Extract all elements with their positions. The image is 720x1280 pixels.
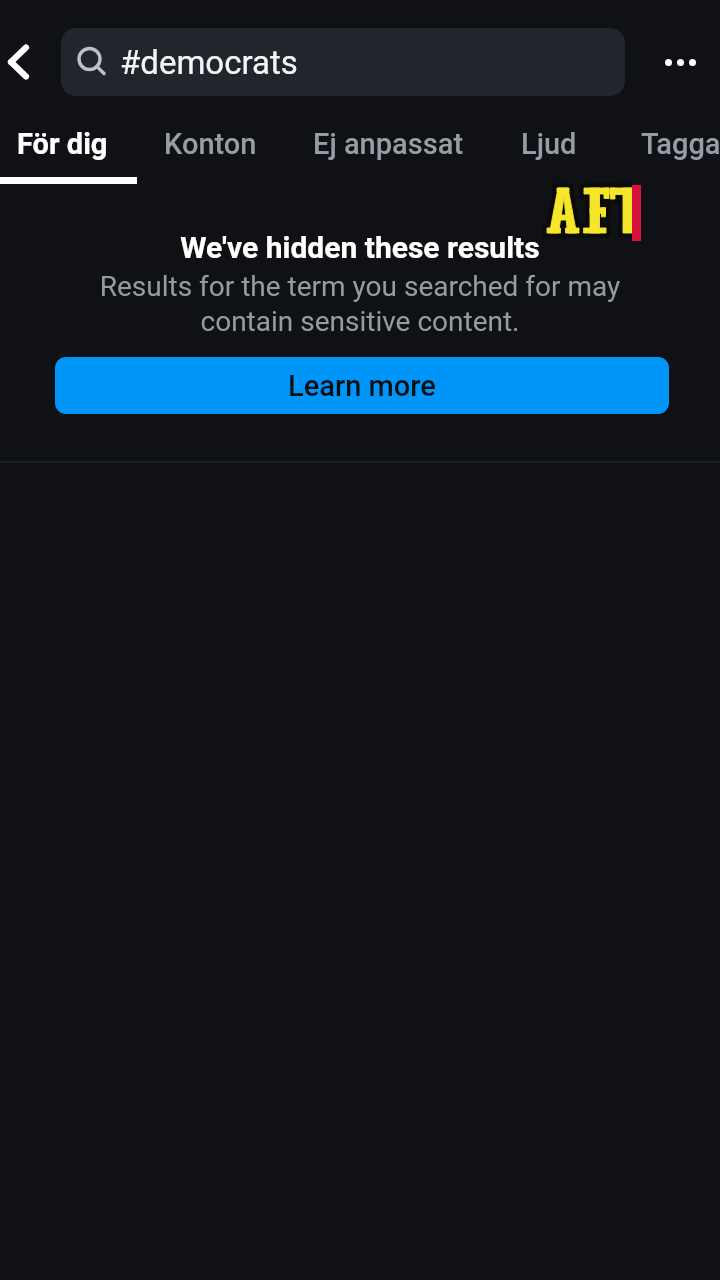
button[interactable]: Ej anpassat: [283, 104, 494, 184]
staticText: #democrats: [120, 43, 298, 82]
staticText: Results for the term you searched for ma…: [88, 270, 632, 338]
button[interactable]: Konton: [134, 104, 287, 184]
button[interactable]: Taggar: [611, 104, 720, 184]
button[interactable]: #democrats: [61, 28, 625, 96]
button[interactable]: Back: [0, 26, 58, 98]
staticText: Konton: [164, 127, 257, 161]
button[interactable]: Learn more: [55, 357, 669, 414]
staticText: Ej anpassat: [313, 127, 464, 161]
staticText: Taggar: [641, 127, 720, 161]
button[interactable]: Ljud: [491, 104, 607, 184]
staticText: Learn more: [288, 369, 436, 403]
staticText: We've hidden these results: [0, 230, 720, 265]
staticText: För dig: [17, 127, 108, 161]
button[interactable]: För dig: [0, 104, 125, 184]
staticText: Ljud: [521, 127, 577, 161]
button[interactable]: More options: [643, 26, 718, 98]
